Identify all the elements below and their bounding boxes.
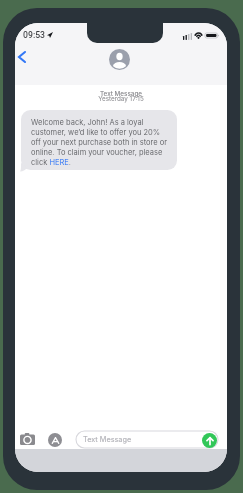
staticText: Yesterday 17:15 <box>15 95 227 103</box>
staticText: Text Message <box>15 90 227 98</box>
button[interactable]: App Store <box>48 433 62 447</box>
button[interactable]: Camera <box>18 431 36 447</box>
staticText: Text Message <box>83 435 132 444</box>
staticText: 09:53 <box>23 30 46 40</box>
button[interactable]: Contact <box>109 49 130 70</box>
button[interactable]: Text Message <box>76 431 218 448</box>
button[interactable]: Welcome back, John! As a loyal customer,… <box>21 110 177 170</box>
button[interactable]: Send <box>202 433 217 448</box>
button[interactable]: Back <box>15 46 29 68</box>
staticText: Welcome back, John! As a loyal customer,… <box>31 118 168 167</box>
